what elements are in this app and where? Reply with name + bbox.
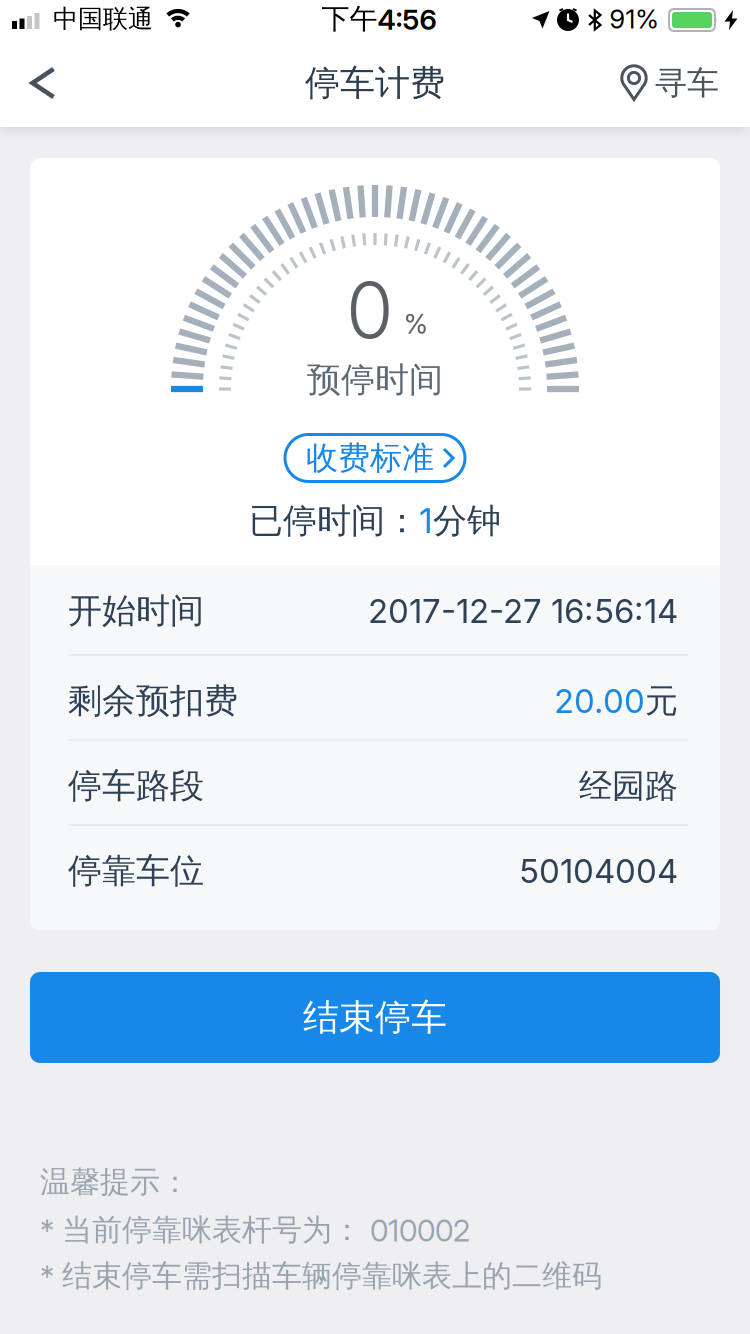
staticText: 20.00: [554, 681, 645, 720]
staticText: 91%: [609, 4, 658, 34]
staticText: 停车路段: [68, 765, 204, 807]
staticText: 分钟: [433, 500, 501, 542]
staticText: 元: [645, 681, 678, 721]
staticText: 温馨提示：: [40, 1164, 190, 1200]
staticText: 收费标准: [306, 438, 434, 478]
button[interactable]: Back: [16, 39, 70, 126]
staticText: * 当前停靠咪表杆号为： 010002: [40, 1212, 470, 1248]
staticText: * 结束停车需扫描车辆停靠咪表上的二维码: [40, 1258, 602, 1294]
staticText: 50104004: [519, 851, 678, 890]
staticText: %: [404, 308, 428, 340]
staticText: 停车计费: [305, 61, 445, 104]
staticText: 开始时间: [68, 590, 204, 632]
staticText: 预停时间: [307, 359, 443, 401]
button[interactable]: 收费标准: [285, 434, 465, 481]
button[interactable]: 寻车: [619, 39, 719, 126]
staticText: 0: [346, 263, 394, 357]
staticText: 1: [419, 501, 433, 541]
staticText: 2017-12-27 16:56:14: [368, 591, 678, 630]
staticText: 已停时间：: [249, 500, 419, 542]
staticText: 停靠车位: [68, 850, 204, 892]
staticText: 剩余预扣费: [68, 680, 238, 722]
staticText: 经园路: [579, 766, 678, 806]
staticText: 下午4:56: [321, 2, 436, 36]
button[interactable]: 结束停车: [30, 972, 720, 1063]
staticText: 结束停车: [303, 995, 447, 1040]
staticText: 寻车: [655, 63, 719, 103]
staticText: 中国联通: [53, 4, 153, 34]
